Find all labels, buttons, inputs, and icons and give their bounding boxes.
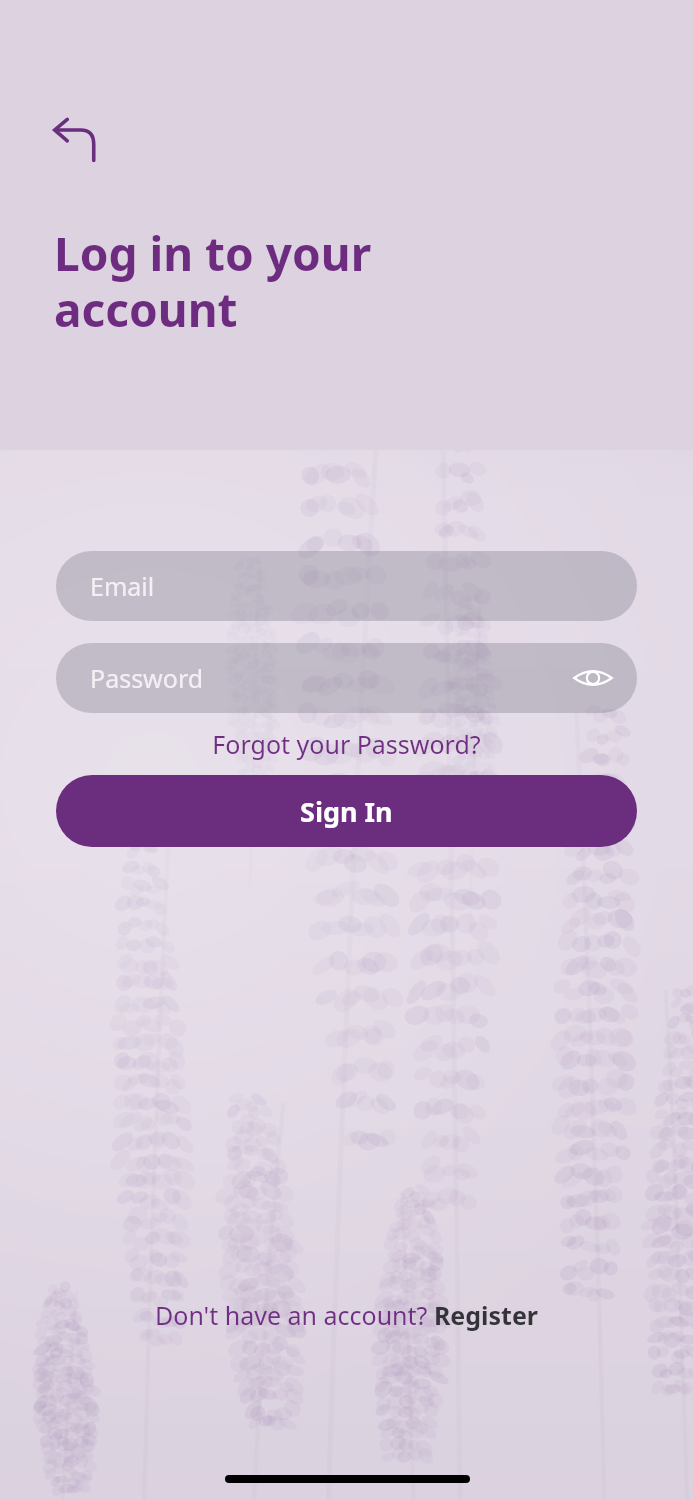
button[interactable]: Password [56,643,637,713]
button[interactable]: Show password [571,656,615,700]
staticText: Forgot your Password? [212,727,481,761]
button[interactable]: Sign In [56,775,637,847]
button[interactable]: Don't have an account? Register [143,1294,551,1336]
staticText: Don't have an account? Register [155,1298,539,1332]
staticText: Log in to your account [54,222,474,340]
button[interactable]: Forgot your Password? [56,727,637,761]
button[interactable]: Email [56,551,637,621]
staticText: Email [90,569,155,603]
staticText: Password [90,661,204,695]
staticText: Sign In [300,793,393,830]
button[interactable]: Back [53,119,95,161]
